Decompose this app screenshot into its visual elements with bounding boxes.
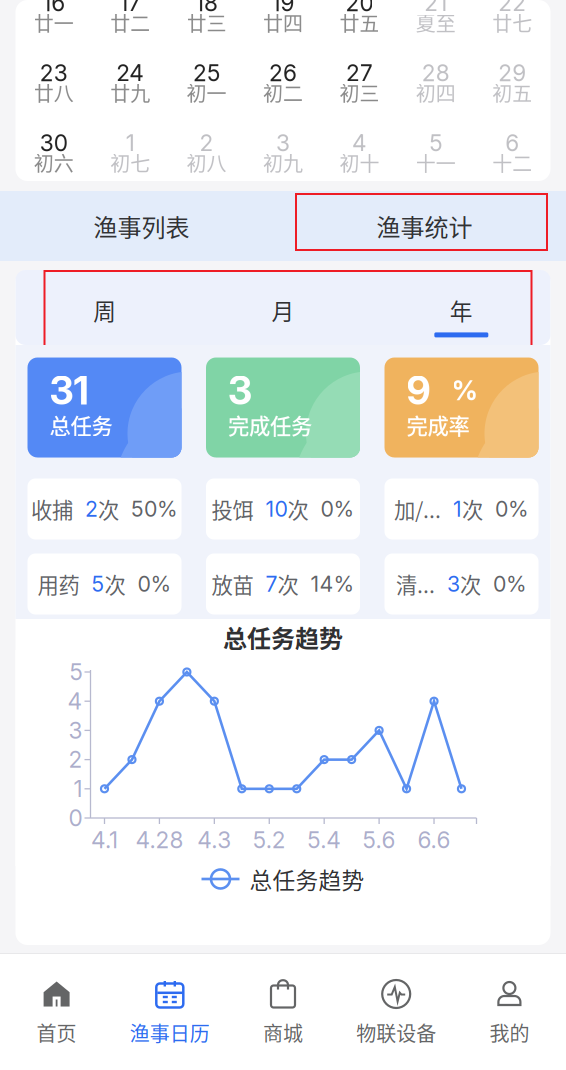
staticText: 初三: [339, 78, 379, 107]
staticText: 总任务: [49, 409, 112, 440]
staticText: 廿五: [339, 8, 379, 37]
staticText: 廿一: [34, 8, 74, 37]
staticText: 首页: [37, 1018, 77, 1047]
staticText: 21: [424, 0, 447, 17]
staticText: 14%: [310, 571, 354, 597]
staticText: 廿二: [110, 8, 150, 37]
staticText: 夏至: [416, 8, 456, 37]
staticText: 渔事统计: [376, 209, 472, 243]
staticText: 加/...: [394, 494, 441, 524]
staticText: 4.1: [91, 826, 118, 854]
staticText: 周: [93, 294, 116, 326]
button[interactable]: 投饵: [206, 478, 360, 539]
staticText: 0%: [137, 571, 171, 597]
button[interactable]: 年: [372, 270, 550, 345]
staticText: 十一: [416, 148, 456, 177]
button[interactable]: 渔事列表: [0, 191, 283, 261]
staticText: 月: [271, 294, 294, 326]
staticText: 7: [265, 571, 277, 597]
staticText: 初六: [34, 148, 74, 177]
staticText: 2: [200, 129, 214, 157]
button[interactable]: 月: [194, 270, 372, 345]
staticText: 18: [195, 0, 218, 17]
staticText: 5: [69, 658, 82, 686]
button[interactable]: 渔事日历: [113, 953, 226, 1070]
staticText: 9: [406, 367, 430, 414]
staticText: 次: [287, 494, 308, 524]
staticText: 25: [193, 59, 220, 87]
staticText: 2: [85, 496, 98, 522]
staticText: 次: [460, 569, 481, 599]
staticText: 28: [422, 59, 450, 87]
staticText: 23: [40, 59, 68, 87]
staticText: 廿七: [492, 8, 532, 37]
button[interactable]: 加/...: [384, 478, 538, 539]
staticText: 16: [42, 0, 65, 17]
staticText: 初二: [263, 78, 303, 107]
staticText: 初九: [263, 148, 303, 177]
button[interactable]: 物联设备: [340, 953, 453, 1070]
staticText: 渔事列表: [93, 209, 189, 243]
staticText: 26: [269, 59, 297, 87]
staticText: 廿三: [187, 8, 227, 37]
staticText: 50%: [131, 496, 178, 522]
button[interactable]: 放苗: [206, 553, 360, 614]
staticText: 用药: [37, 569, 79, 599]
button[interactable]: 首页: [0, 953, 113, 1070]
staticText: 10: [265, 496, 287, 522]
staticText: 初五: [492, 78, 532, 107]
button[interactable]: 收捕: [27, 478, 181, 539]
staticText: 0%: [493, 571, 527, 597]
staticText: 次: [462, 494, 483, 524]
staticText: 我的: [489, 1018, 529, 1047]
staticText: 20: [345, 0, 373, 17]
staticText: 17: [119, 0, 141, 17]
staticText: 24: [116, 59, 144, 87]
staticText: 0%: [320, 496, 354, 522]
staticText: 次: [98, 494, 119, 524]
staticText: 29: [498, 59, 526, 87]
staticText: 27: [346, 59, 373, 87]
staticText: 初十: [339, 148, 379, 177]
staticText: 渔事日历: [130, 1018, 210, 1047]
button[interactable]: 我的: [453, 953, 566, 1070]
staticText: 1: [126, 129, 135, 157]
staticText: 30: [40, 129, 68, 157]
staticText: 廿九: [110, 78, 150, 107]
button[interactable]: 用药: [27, 553, 181, 614]
staticText: 廿八: [34, 78, 74, 107]
staticText: 1: [453, 496, 462, 522]
button[interactable]: 渔事统计: [283, 191, 566, 261]
staticText: 年: [450, 294, 473, 326]
staticText: 廿四: [263, 8, 303, 37]
staticText: 3: [68, 717, 82, 744]
staticText: %: [451, 374, 477, 407]
staticText: 次: [104, 569, 125, 599]
button[interactable]: 商城: [226, 953, 340, 1070]
staticText: 初七: [110, 148, 150, 177]
staticText: 3: [276, 129, 290, 157]
button[interactable]: 清...: [384, 553, 538, 614]
staticText: 放苗: [211, 569, 253, 599]
staticText: 清...: [396, 569, 435, 599]
staticText: 初一: [187, 78, 227, 107]
button[interactable]: 周: [15, 270, 194, 345]
staticText: 4: [67, 687, 82, 715]
staticText: 3: [228, 367, 252, 414]
staticText: 5.6: [363, 826, 396, 854]
staticText: 19: [271, 0, 294, 17]
staticText: 0%: [495, 496, 529, 522]
staticText: 5.2: [253, 826, 286, 854]
staticText: 收捕: [31, 494, 73, 524]
staticText: 十二: [492, 148, 532, 177]
